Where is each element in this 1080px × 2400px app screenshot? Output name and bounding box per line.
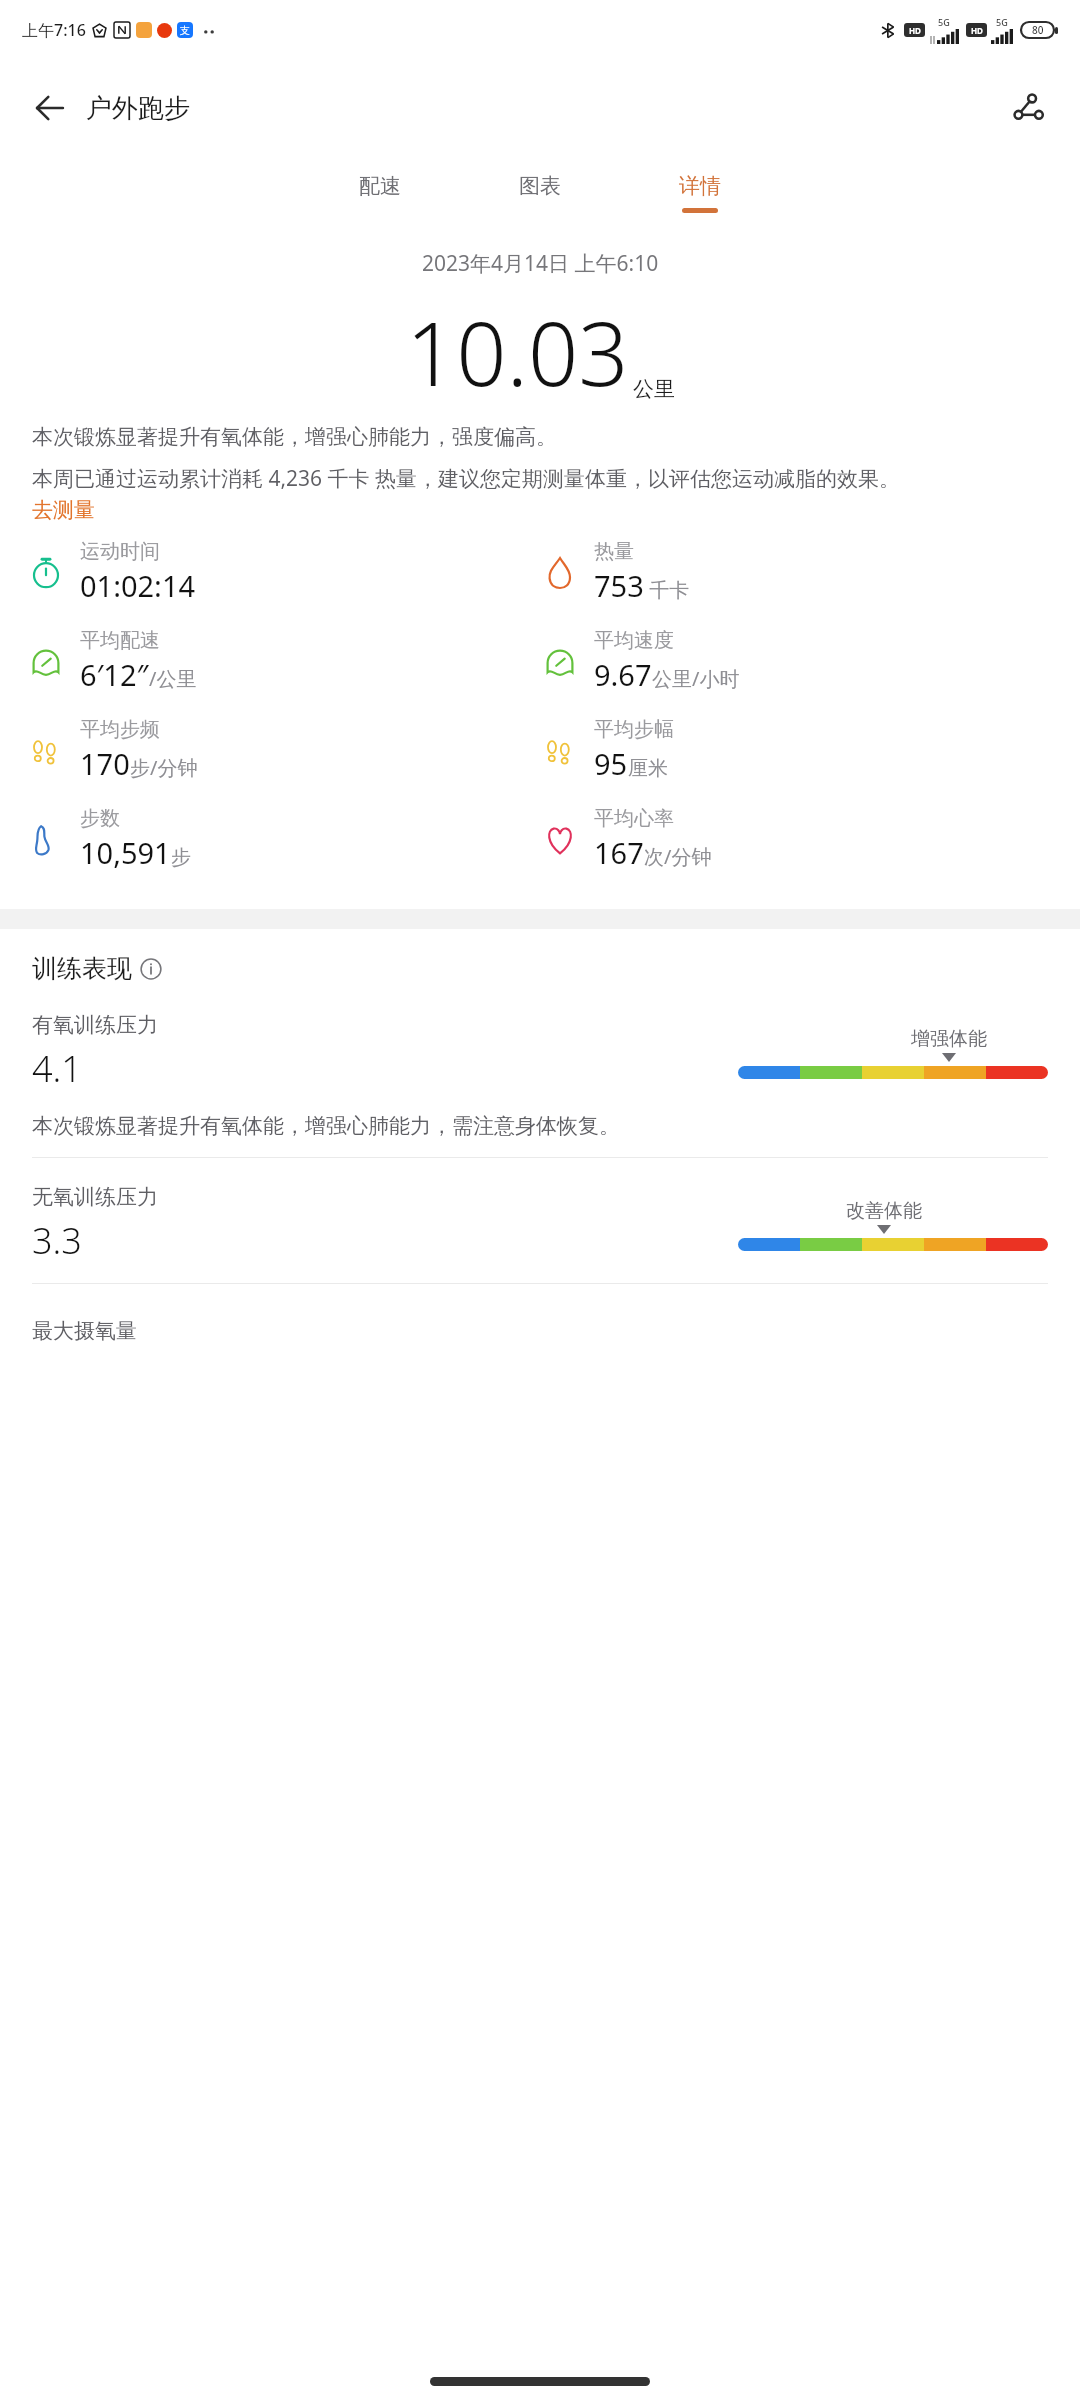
- staticText: 3.3: [32, 1216, 82, 1265]
- staticText: 配速: [359, 173, 401, 199]
- staticText: 80: [1032, 23, 1044, 37]
- staticText: 167: [594, 833, 644, 872]
- staticText: HD: [971, 25, 983, 36]
- staticText: 本周已通过运动累计消耗 4,236 千卡 热量，建议您定期测量体重，以评估您运动…: [32, 464, 901, 493]
- staticText: 753: [594, 566, 644, 605]
- staticText: 训练表现: [32, 953, 132, 984]
- staticText: 本次锻炼显著提升有氧体能，增强心肺能力，强度偏高。: [32, 424, 557, 450]
- staticText: 步/分钟: [130, 754, 198, 781]
- staticText: 上午7:16: [22, 19, 86, 41]
- staticText: 平均心率: [594, 806, 674, 831]
- staticText: 4.1: [32, 1044, 82, 1093]
- button[interactable]: 配速: [300, 173, 460, 213]
- button[interactable]: 运动时间: [26, 539, 540, 605]
- staticText: 支: [180, 24, 190, 37]
- staticText: 5G: [996, 16, 1008, 28]
- staticText: 运动时间: [80, 539, 160, 564]
- staticText: 改善体能: [846, 1199, 922, 1223]
- staticText: /公里: [149, 665, 197, 692]
- staticText: 厘米: [628, 756, 668, 781]
- staticText: 95: [594, 744, 628, 783]
- staticText: 平均步频: [80, 717, 160, 742]
- staticText: HD: [909, 25, 921, 36]
- staticText: 公里/小时: [652, 665, 740, 692]
- button[interactable]: 返回: [24, 82, 76, 134]
- staticText: 10.03: [406, 292, 629, 412]
- staticText: 2023年4月14日 上午6:10: [422, 249, 659, 278]
- staticText: 平均配速: [80, 628, 160, 653]
- staticText: 去测量: [32, 497, 95, 523]
- staticText: 170: [80, 744, 130, 783]
- button[interactable]: 热量: [540, 539, 1054, 605]
- button[interactable]: 平均步幅: [540, 717, 1054, 783]
- staticText: 千卡: [644, 576, 690, 603]
- staticText: 详情: [679, 173, 721, 199]
- button[interactable]: 平均心率: [540, 806, 1054, 872]
- button[interactable]: 详情: [620, 173, 780, 213]
- button[interactable]: 训练表现: [32, 953, 162, 984]
- button[interactable]: 分享: [1000, 80, 1056, 136]
- button[interactable]: 图表: [460, 173, 620, 213]
- button[interactable]: 平均配速: [26, 628, 540, 694]
- staticText: 最大摄氧量: [32, 1318, 137, 1344]
- button[interactable]: 步数: [26, 806, 540, 872]
- button[interactable]: 平均速度: [540, 628, 1054, 694]
- staticText: 01:02:14: [80, 566, 196, 605]
- staticText: 步: [171, 845, 191, 870]
- staticText: 9.67: [594, 655, 652, 694]
- staticText: 6′12″: [80, 655, 149, 694]
- staticText: 公里: [633, 376, 675, 402]
- staticText: 无氧训练压力: [32, 1184, 158, 1210]
- staticText: 户外跑步: [86, 92, 190, 125]
- staticText: 10,591: [80, 833, 171, 872]
- staticText: 平均步幅: [594, 717, 674, 742]
- staticText: 图表: [519, 173, 561, 199]
- staticText: 5G: [938, 16, 950, 28]
- staticText: 步数: [80, 806, 120, 831]
- staticText: 本次锻炼显著提升有氧体能，增强心肺能力，需注意身体恢复。: [32, 1113, 620, 1139]
- staticText: 有氧训练压力: [32, 1012, 158, 1038]
- staticText: 平均速度: [594, 628, 674, 653]
- button[interactable]: 平均步频: [26, 717, 540, 783]
- staticText: 增强体能: [911, 1027, 987, 1051]
- button[interactable]: 去测量: [32, 497, 95, 523]
- staticText: 热量: [594, 539, 634, 564]
- staticText: 次/分钟: [644, 843, 712, 870]
